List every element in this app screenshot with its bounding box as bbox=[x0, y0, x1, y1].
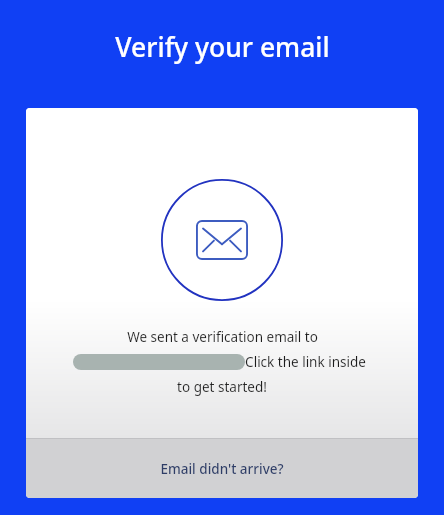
staticText: to get started! bbox=[177, 378, 267, 396]
staticText: Click the link inside bbox=[245, 353, 366, 371]
other: Email verification bbox=[161, 179, 283, 301]
staticText: Email didn't arrive? bbox=[160, 460, 284, 478]
button[interactable]: Email didn't arrive? bbox=[26, 439, 418, 498]
staticText: We sent a verification email to bbox=[127, 328, 318, 346]
staticText: Verify your email bbox=[115, 29, 330, 65]
